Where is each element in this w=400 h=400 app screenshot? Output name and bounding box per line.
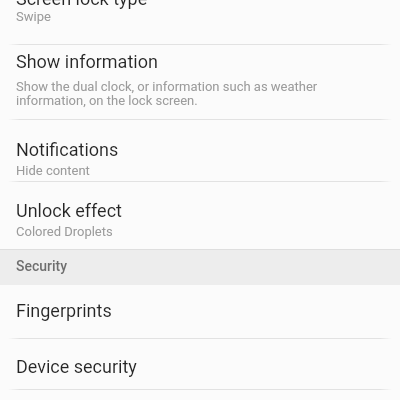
staticText: Show information bbox=[16, 51, 158, 72]
staticText: Show the dual clock, or information such… bbox=[16, 79, 318, 109]
staticText: Fingerprints bbox=[16, 300, 112, 321]
staticText: Unlock effect bbox=[16, 200, 122, 221]
staticText: Swipe bbox=[16, 9, 51, 24]
button[interactable] bbox=[0, 0, 400, 44]
button[interactable] bbox=[0, 284, 400, 338]
staticText: Colored Droplets bbox=[16, 224, 113, 239]
button[interactable] bbox=[0, 45, 400, 119]
staticText: Screen lock type bbox=[16, 0, 148, 9]
staticText: Device security bbox=[16, 356, 137, 377]
staticText: Notifications bbox=[16, 139, 119, 160]
staticText: Security bbox=[16, 258, 68, 274]
staticText: Hide content bbox=[16, 163, 90, 178]
button[interactable] bbox=[0, 339, 400, 389]
button[interactable] bbox=[0, 182, 400, 249]
button[interactable] bbox=[0, 120, 400, 181]
